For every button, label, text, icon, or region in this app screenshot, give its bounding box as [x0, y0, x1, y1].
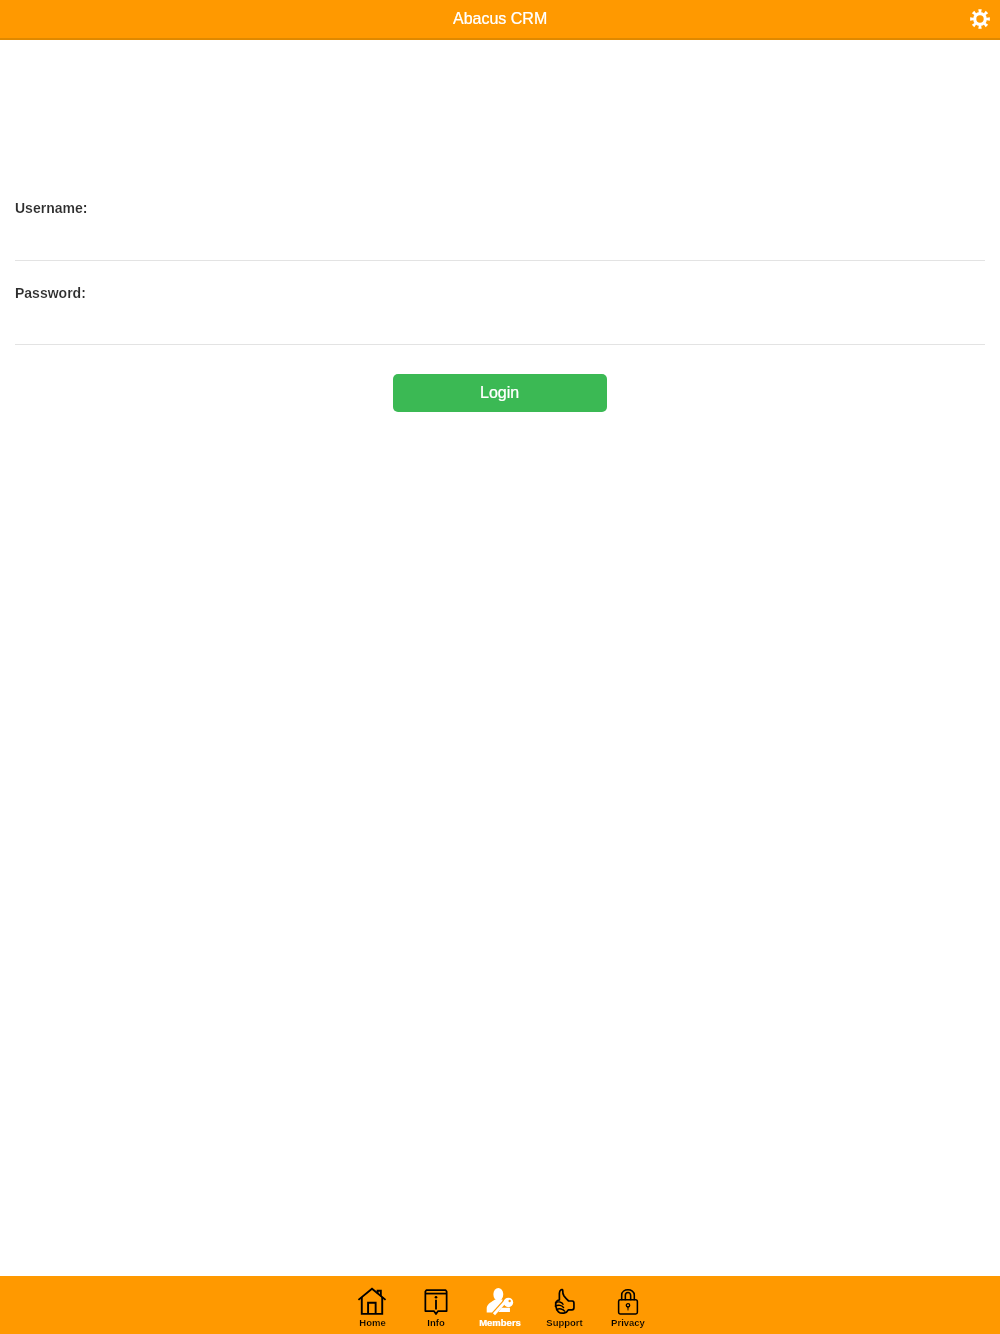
- button[interactable]: Login: [393, 374, 607, 412]
- staticText: Members: [479, 1317, 521, 1328]
- button[interactable]: Home: [340, 1276, 404, 1334]
- button[interactable]: Support: [532, 1276, 596, 1334]
- staticText: Abacus CRM: [453, 10, 548, 28]
- button[interactable]: Info: [404, 1276, 468, 1334]
- staticText: Info: [427, 1317, 445, 1328]
- staticText: Password:: [15, 285, 86, 301]
- button[interactable]: Settings: [970, 9, 990, 29]
- staticText: Login: [480, 384, 520, 402]
- staticText: Home: [359, 1317, 386, 1328]
- button[interactable]: Members: [468, 1276, 532, 1334]
- button[interactable]: Privacy: [596, 1276, 660, 1334]
- staticText: Support: [546, 1317, 583, 1328]
- staticText: Username:: [15, 200, 88, 216]
- staticText: Privacy: [611, 1317, 645, 1328]
